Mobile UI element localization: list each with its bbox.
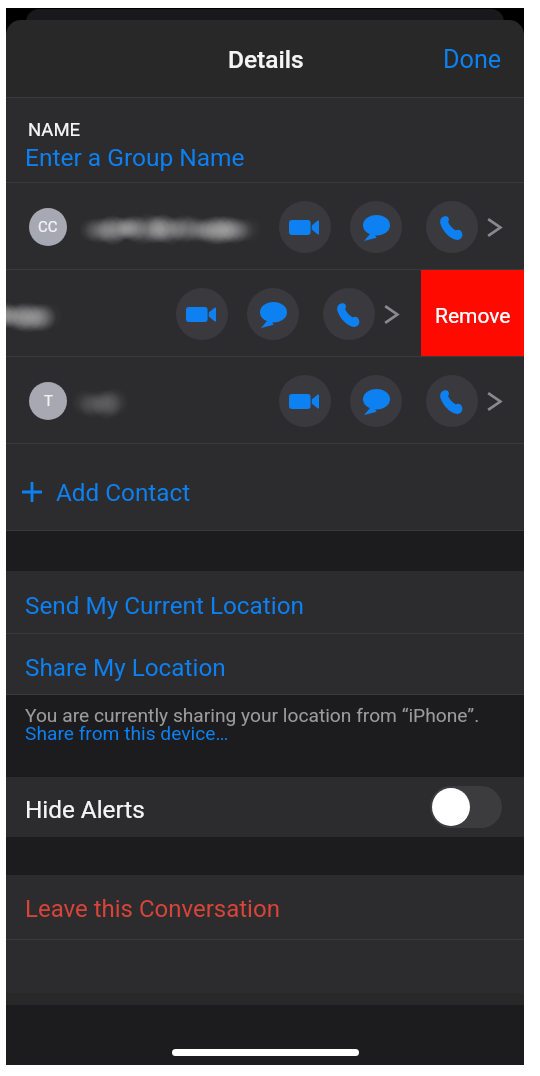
staticText: T [44, 392, 53, 410]
button[interactable]: Send My Current Location [6, 571, 524, 634]
button[interactable]: Hide Alerts [6, 777, 524, 837]
button[interactable]: Message [350, 201, 402, 253]
staticText: Remove [435, 304, 511, 329]
staticText: Enter a Group Name [25, 143, 245, 172]
staticText: CC [38, 218, 58, 236]
button[interactable]: CC [6, 183, 524, 270]
button[interactable]: Remove [421, 270, 524, 357]
staticText: Share My Location [25, 653, 226, 681]
button[interactable]: T [6, 357, 524, 444]
button[interactable]: Done [423, 30, 522, 90]
button[interactable]: Video call [279, 375, 331, 427]
staticText: Leave this Conversation [25, 895, 280, 923]
staticText: Send My Current Location [25, 591, 304, 619]
button[interactable]: Video call [279, 201, 331, 253]
button[interactable]: Share My Location [6, 634, 524, 695]
staticText: Details [228, 45, 304, 74]
button[interactable]: Hide Alerts [430, 786, 502, 828]
button[interactable]: Add Contact [6, 444, 524, 531]
button[interactable]: NAME [6, 98, 524, 183]
button[interactable]: Call [323, 288, 375, 340]
button[interactable]: Message [350, 375, 402, 427]
staticText: You are currently sharing your location … [25, 704, 480, 727]
button[interactable]: Call [426, 201, 478, 253]
button[interactable]: Leave this Conversation [6, 875, 524, 940]
staticText: Done [443, 45, 502, 75]
staticText: Add Contact [56, 478, 191, 506]
staticText: Hide Alerts [25, 795, 145, 823]
button[interactable]: Share from this device… [25, 722, 229, 745]
button[interactable]: Video call [176, 288, 228, 340]
button[interactable]: Call [426, 375, 478, 427]
staticText: NAME [28, 119, 81, 141]
button[interactable]: Message [247, 288, 299, 340]
